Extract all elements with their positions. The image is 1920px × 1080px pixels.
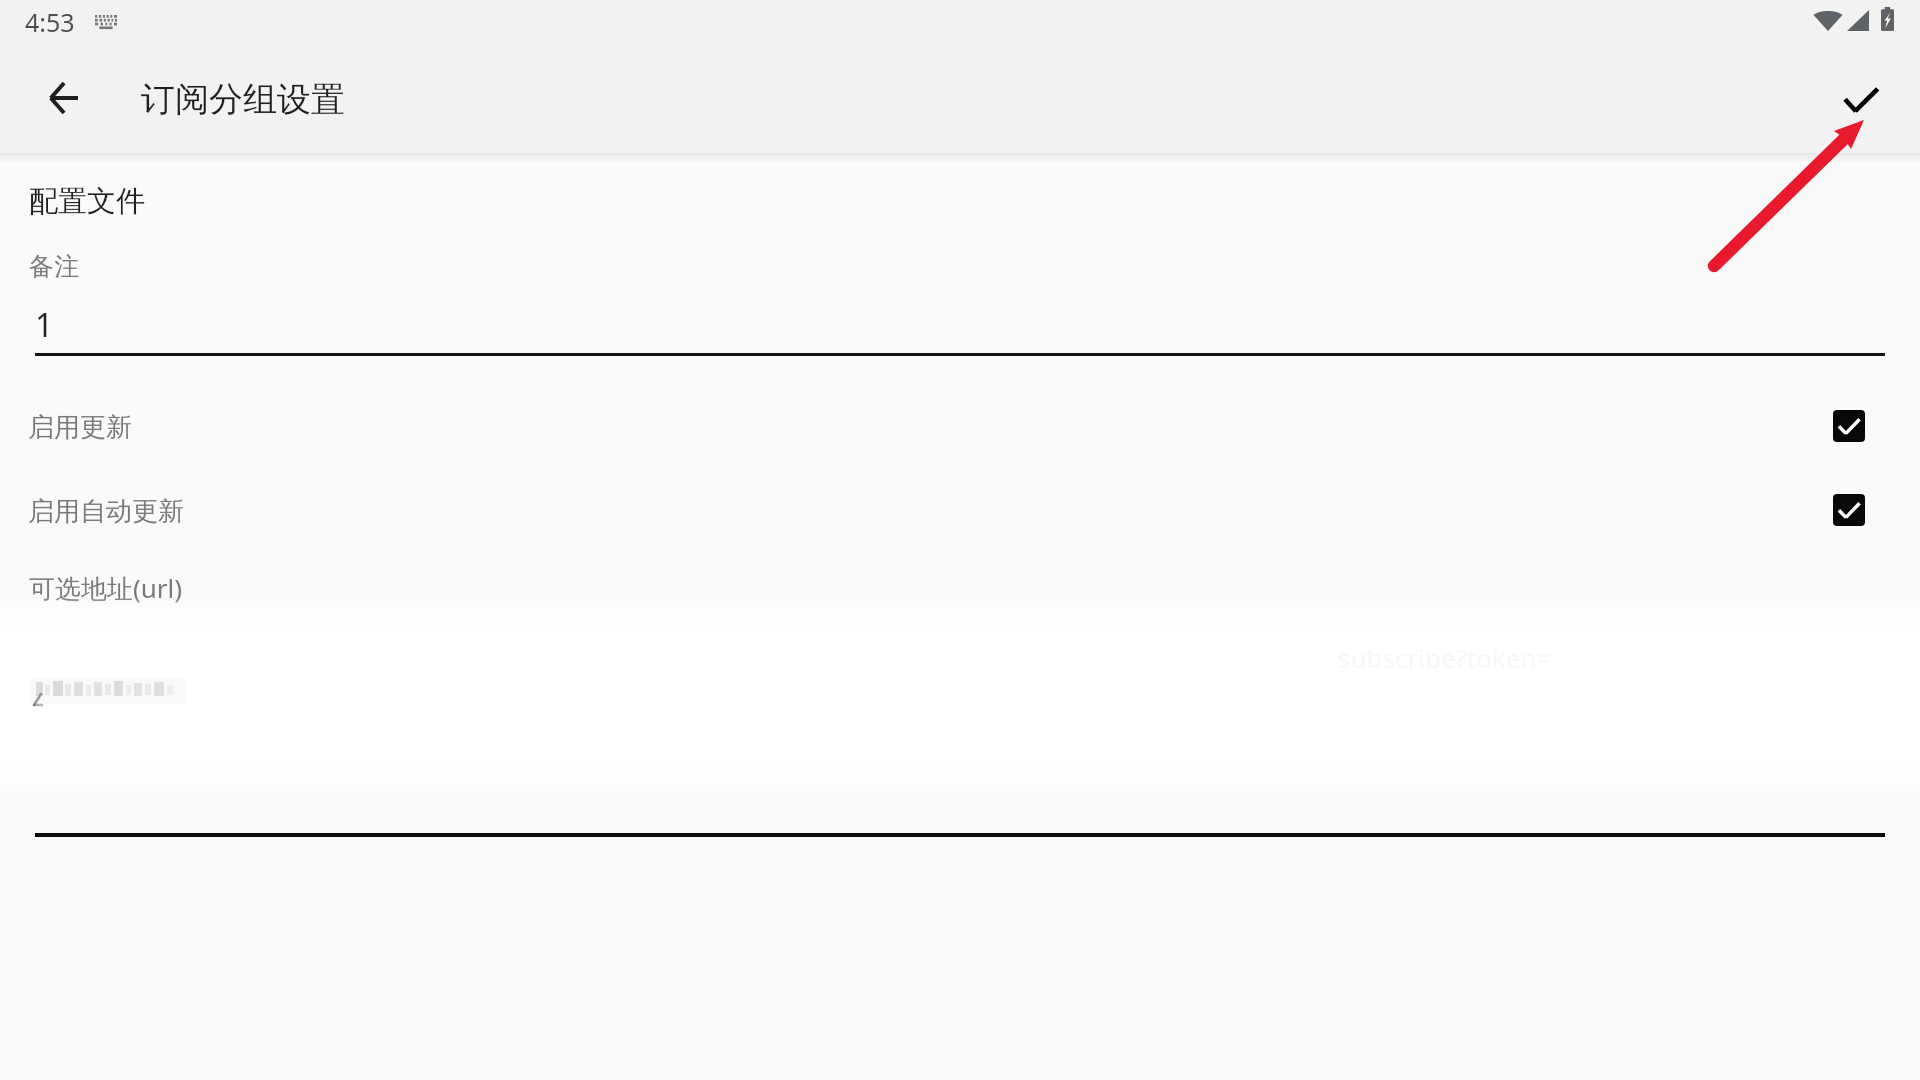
button[interactable]: 可选地址(url) [0,560,1920,840]
staticText: 备注 [29,251,79,282]
staticText: 启用更新 [28,411,132,444]
button[interactable]: Confirm [1818,50,1904,150]
button[interactable]: 备注 [29,240,1885,360]
button[interactable]: Back [18,45,108,150]
staticText: 订阅分组设置 [141,78,345,121]
staticText: 可选地址(url) [29,570,183,606]
button[interactable]: 启用更新 [1833,410,1865,442]
staticText: 启用自动更新 [28,495,184,528]
staticText: 4:53 [25,5,75,39]
button[interactable]: 启用更新 [0,392,1920,460]
button[interactable]: 启用自动更新 [1833,494,1865,526]
staticText: 1 [35,303,54,347]
staticText: 配置文件 [29,183,145,220]
button[interactable]: 启用自动更新 [0,476,1920,544]
